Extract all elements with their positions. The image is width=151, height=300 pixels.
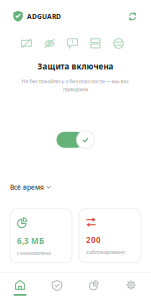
button[interactable]: 200: [79, 209, 141, 263]
staticText: Защита включена: [37, 61, 113, 72]
button[interactable]: Refresh: [128, 12, 137, 21]
staticText: прикроем: [63, 86, 88, 93]
button[interactable]: Protection: [40, 272, 74, 300]
button[interactable]: Home: [3, 272, 37, 300]
button[interactable]: 6,3 МБ: [10, 209, 72, 263]
button[interactable]: Ad blocking: [21, 38, 32, 49]
staticText: заблокировано: [86, 248, 125, 255]
button[interactable]: DNS protection: [90, 38, 101, 49]
staticText: Всё время: [10, 183, 44, 192]
button[interactable]: Protection toggle: [56, 131, 94, 149]
button[interactable]: Tracking protection: [44, 38, 55, 49]
staticText: сэкономлено: [17, 249, 51, 256]
button[interactable]: Statistics: [77, 272, 111, 300]
button[interactable]: Annoyances: [67, 38, 78, 49]
button[interactable]: Browsing security: [113, 38, 124, 49]
button[interactable]: Всё время: [10, 183, 51, 192]
staticText: 6,3 МБ: [17, 236, 44, 246]
staticText: 200: [86, 235, 101, 245]
button[interactable]: Settings: [114, 272, 148, 300]
staticText: ADGUARD: [27, 12, 61, 21]
staticText: Не беспокойтесь о безопасности — мы вас: [21, 78, 129, 85]
